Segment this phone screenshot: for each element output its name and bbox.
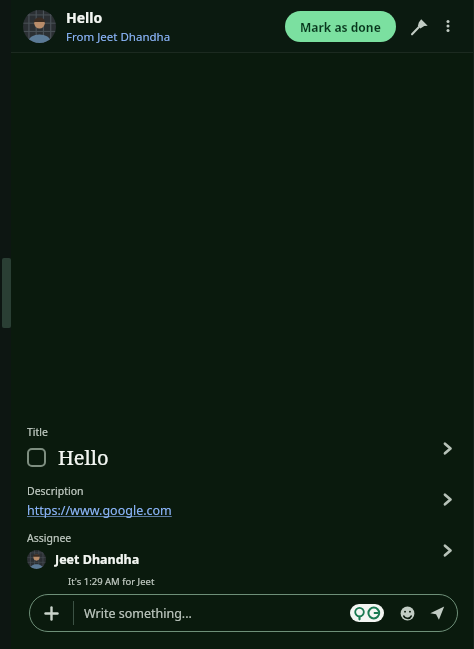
button[interactable]: Title (27, 425, 462, 471)
button[interactable]: Assignee (27, 531, 462, 569)
button[interactable]: Add attachment (29, 594, 73, 632)
staticText: Hello (66, 8, 103, 27)
staticText: From Jeet Dhandha (66, 29, 171, 45)
button[interactable]: Add attachment (29, 594, 458, 632)
button[interactable]: More options (434, 12, 462, 40)
staticText: https://www.google.com (27, 502, 172, 519)
button[interactable]: Send (422, 598, 452, 628)
button[interactable]: Pin (404, 11, 434, 41)
staticText: Title (27, 425, 48, 439)
button[interactable]: Mark as done (285, 11, 396, 42)
staticText: It's 1:29 AM for Jeet (68, 575, 155, 588)
staticText: Hello (58, 444, 109, 471)
button[interactable]: Smart suggestions (350, 604, 384, 622)
staticText: Description (27, 484, 84, 498)
staticText: Write something... (84, 605, 350, 622)
button[interactable]: Description (27, 484, 462, 519)
staticText: Jeet Dhandha (55, 551, 140, 568)
staticText: Mark as done (300, 19, 381, 35)
button[interactable]: Mark complete (27, 448, 46, 467)
staticText: Assignee (27, 531, 72, 545)
button[interactable]: Emoji (394, 600, 420, 626)
